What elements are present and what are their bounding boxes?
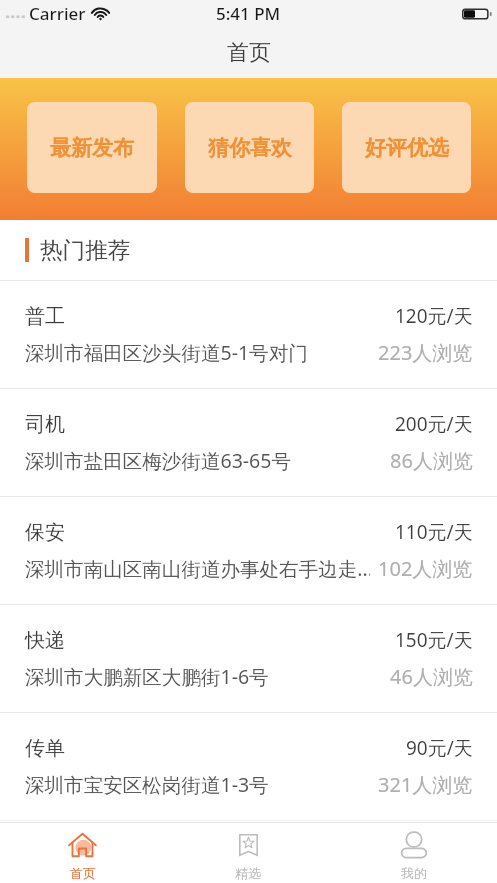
staticText: Carrier [29, 2, 86, 25]
staticText: 86人浏览 [390, 447, 473, 474]
staticText: 热门推荐 [40, 236, 131, 264]
staticText: 猜你喜欢 [208, 135, 292, 161]
button[interactable]: 好评优选 [342, 102, 471, 193]
button[interactable]: 猜你喜欢 [185, 102, 314, 193]
staticText: 司机 [25, 412, 65, 437]
staticText: 深圳市大鹏新区大鹏街1-6号 [25, 663, 382, 690]
staticText: 快递 [25, 628, 65, 653]
staticText: 普工 [25, 304, 65, 329]
staticText: 102人浏览 [378, 555, 473, 582]
staticText: 150元/天 [395, 627, 473, 653]
staticText: 深圳市福田区沙头街道5-1号对门 [25, 339, 370, 366]
button[interactable]: 首页 [0, 823, 165, 883]
button[interactable]: 保安 [0, 497, 497, 604]
button[interactable]: 精选 [165, 823, 331, 883]
staticText: 120元/天 [395, 303, 473, 329]
staticText: 223人浏览 [378, 339, 473, 366]
staticText: 90元/天 [406, 735, 473, 761]
button[interactable]: 传单 [0, 713, 497, 820]
button[interactable]: 我的 [331, 823, 497, 883]
staticText: 深圳市南山区南山街道办事处右手边走... [25, 555, 370, 582]
staticText: 首页 [70, 865, 96, 881]
staticText: 我的 [401, 865, 427, 881]
button[interactable]: 司机 [0, 389, 497, 496]
button[interactable]: 快递 [0, 605, 497, 712]
button[interactable]: 最新发布 [27, 102, 157, 193]
staticText: 精选 [235, 865, 261, 881]
staticText: 110元/天 [395, 519, 473, 545]
staticText: 好评优选 [365, 135, 449, 161]
button[interactable]: 普工 [0, 281, 497, 388]
staticText: 传单 [25, 736, 65, 761]
staticText: 200元/天 [395, 411, 473, 437]
staticText: 首页 [227, 39, 271, 67]
staticText: 保安 [25, 520, 65, 545]
staticText: 5:41 PM [216, 2, 281, 25]
staticText: 最新发布 [50, 135, 134, 161]
staticText: 深圳市宝安区松岗街道1-3号 [25, 771, 370, 798]
staticText: 321人浏览 [378, 771, 473, 798]
staticText: 深圳市盐田区梅沙街道63-65号 [25, 447, 382, 474]
staticText: 46人浏览 [390, 663, 473, 690]
